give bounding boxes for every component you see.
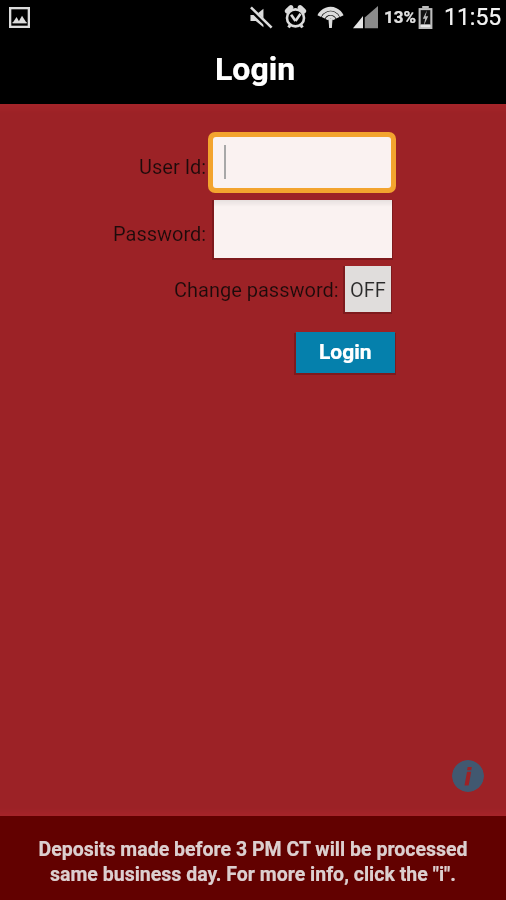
button[interactable]: OFF bbox=[345, 266, 391, 312]
button[interactable]: User Id input bbox=[213, 137, 391, 188]
button[interactable]: Information bbox=[452, 760, 484, 792]
staticText: OFF bbox=[350, 278, 386, 301]
button[interactable]: Login bbox=[296, 332, 395, 373]
staticText: Login bbox=[319, 340, 372, 365]
staticText: Password: bbox=[113, 222, 207, 245]
button[interactable]: Password input bbox=[214, 200, 392, 258]
staticText: 11:55 bbox=[444, 4, 502, 31]
staticText: Deposits made before 3 PM CT will be pro… bbox=[0, 838, 506, 886]
staticText: Change password: bbox=[174, 278, 339, 301]
staticText: User Id: bbox=[139, 155, 207, 178]
staticText: 13% bbox=[384, 7, 417, 27]
staticText: Login bbox=[215, 50, 296, 88]
